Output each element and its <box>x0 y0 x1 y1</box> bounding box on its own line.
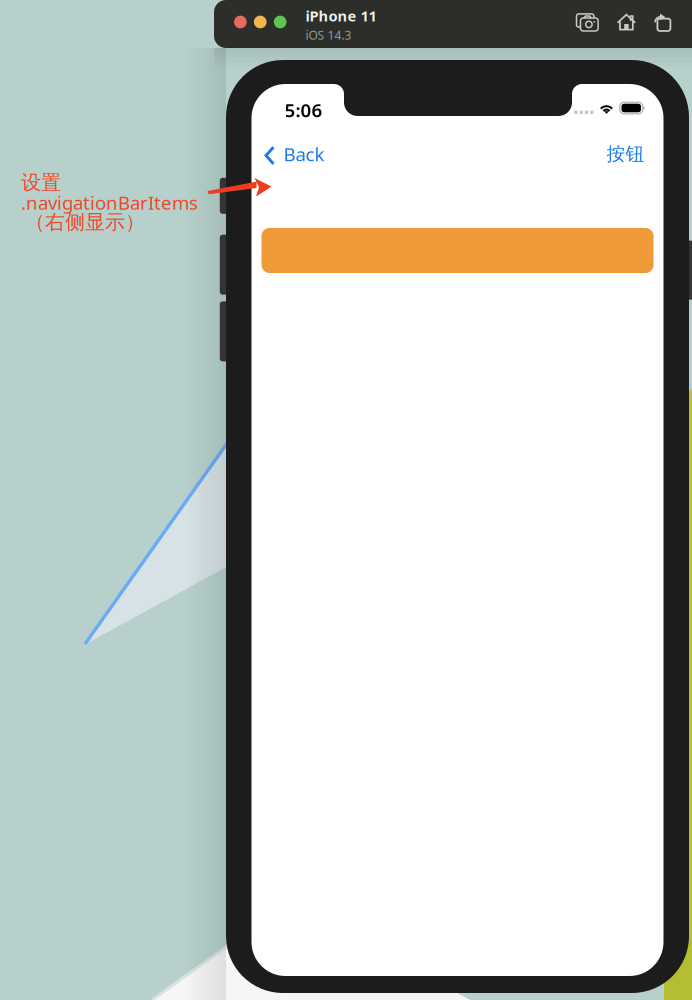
button[interactable]: Rotate <box>654 13 671 31</box>
staticText: iOS 14.3 <box>305 27 351 43</box>
staticText: .navigationBarItems <box>21 190 198 215</box>
button[interactable]: 按钮 <box>597 132 653 176</box>
button[interactable] <box>251 228 663 273</box>
staticText: iPhone 11 <box>305 6 376 25</box>
staticText: 按钮 <box>606 142 644 165</box>
staticText: Back <box>283 142 324 166</box>
staticText: 5:06 <box>284 98 322 122</box>
staticText: （右侧显示） <box>25 210 145 234</box>
button[interactable]: Back <box>251 132 334 176</box>
button[interactable]: Screenshot <box>576 13 598 31</box>
staticText: 设置 <box>21 170 61 195</box>
button[interactable]: Home <box>617 13 636 31</box>
